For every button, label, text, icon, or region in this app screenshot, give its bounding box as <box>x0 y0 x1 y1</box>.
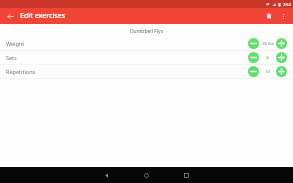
staticText: Weight <box>6 40 25 47</box>
button[interactable]: Increase Repetitions <box>276 66 287 77</box>
staticText: 7:54 <box>283 2 291 7</box>
staticText: 4 <box>266 55 269 61</box>
staticText: Edit exercises <box>20 11 66 21</box>
button[interactable]: Decrease Repetitions <box>248 66 259 77</box>
button[interactable]: Back <box>100 169 113 182</box>
staticText: Dumbbell Flys <box>0 28 293 35</box>
staticText: 10 <box>265 69 270 75</box>
button[interactable]: Recent apps <box>180 169 193 182</box>
button[interactable]: Increase Weight <box>276 38 287 49</box>
button[interactable]: More options <box>277 10 289 22</box>
staticText: Repetitions <box>6 68 36 75</box>
button[interactable]: Decrease Sets <box>248 52 259 63</box>
button[interactable]: Back <box>4 10 16 22</box>
button[interactable]: Decrease Weight <box>248 38 259 49</box>
button[interactable]: Delete <box>263 10 275 22</box>
button[interactable]: Home <box>140 169 153 182</box>
staticText: 20 lbs <box>262 41 274 47</box>
staticText: Sets <box>6 54 17 61</box>
button[interactable]: Increase Sets <box>276 52 287 63</box>
